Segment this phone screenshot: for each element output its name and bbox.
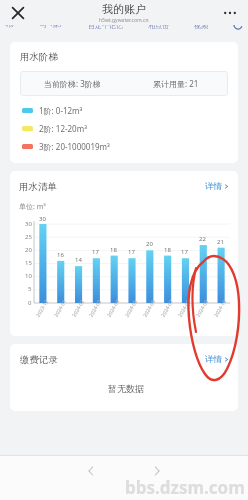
button[interactable]: 相点击: [148, 25, 169, 30]
staticText: 18: [110, 246, 117, 254]
staticText: 缴费记录: [20, 354, 58, 366]
staticText: 30: [39, 215, 46, 223]
staticText: 1阶: 0-12m³: [39, 105, 83, 116]
staticText: 2024-07: [160, 298, 175, 318]
staticText: 2024-06: [142, 298, 157, 318]
staticText: 16: [57, 251, 64, 259]
button[interactable]: Forward: [149, 463, 165, 479]
staticText: 累计用量: 21: [153, 78, 199, 89]
staticText: 2024-09: [195, 298, 210, 318]
staticText: 10: [25, 272, 32, 280]
staticText: 5: [28, 285, 32, 293]
staticText: 暂无数据: [108, 383, 144, 394]
staticText: 18: [164, 246, 171, 254]
staticText: 视频: [194, 25, 208, 30]
staticText: 2024-10: [213, 298, 228, 318]
staticText: 17: [92, 248, 99, 256]
staticText: 2024-01: [53, 298, 68, 318]
staticText: 2023-12: [35, 298, 50, 318]
staticText: 17: [128, 248, 135, 256]
staticText: 2024-03: [88, 298, 103, 318]
staticText: 22: [199, 235, 206, 243]
staticText: 14: [75, 256, 82, 264]
staticText: 2024-04: [106, 298, 121, 318]
staticText: 详情: [205, 354, 222, 365]
button[interactable]: Refresh: [233, 25, 243, 30]
staticText: 0: [28, 299, 32, 307]
button[interactable]: 与→家/: [40, 25, 63, 30]
button[interactable]: 布/: [5, 25, 15, 30]
staticText: 2阶: 12-20m³: [39, 123, 87, 134]
button[interactable]: Back: [83, 463, 99, 479]
button[interactable]: 详情: [203, 353, 231, 366]
staticText: 17: [181, 248, 188, 256]
staticText: 用水阶梯: [20, 51, 58, 63]
staticText: 详情: [205, 181, 222, 192]
staticText: 相点击: [148, 25, 169, 30]
staticText: 3阶: 20-1000019m³: [39, 141, 110, 152]
button[interactable]: 自定个记忆: [88, 25, 123, 30]
staticText: 布/: [5, 25, 15, 30]
staticText: 2024-05: [124, 298, 139, 318]
button[interactable]: 详情: [203, 180, 231, 193]
button[interactable]: 视频: [194, 25, 208, 30]
staticText: 25: [25, 233, 32, 241]
staticText: bbs.dzsm.com: [125, 476, 245, 499]
staticText: 自定个记忆: [88, 25, 123, 30]
staticText: 15: [25, 259, 32, 267]
staticText: 单位: m³: [19, 202, 46, 212]
staticText: 与→家/: [40, 25, 63, 30]
staticText: 30: [25, 220, 32, 228]
staticText: 2024-02: [71, 298, 86, 318]
staticText: 20: [25, 246, 32, 254]
button[interactable]: Close: [7, 2, 29, 24]
staticText: 20: [146, 240, 153, 248]
staticText: 2024-08: [177, 298, 192, 318]
staticText: 我的账户: [102, 2, 146, 16]
staticText: h5wt.gywater.com.cn: [99, 17, 149, 24]
staticText: 当前阶梯: 3阶梯: [44, 78, 101, 89]
staticText: 用水清单: [19, 181, 57, 193]
button[interactable]: More options: [219, 2, 241, 24]
staticText: 21: [217, 238, 224, 246]
